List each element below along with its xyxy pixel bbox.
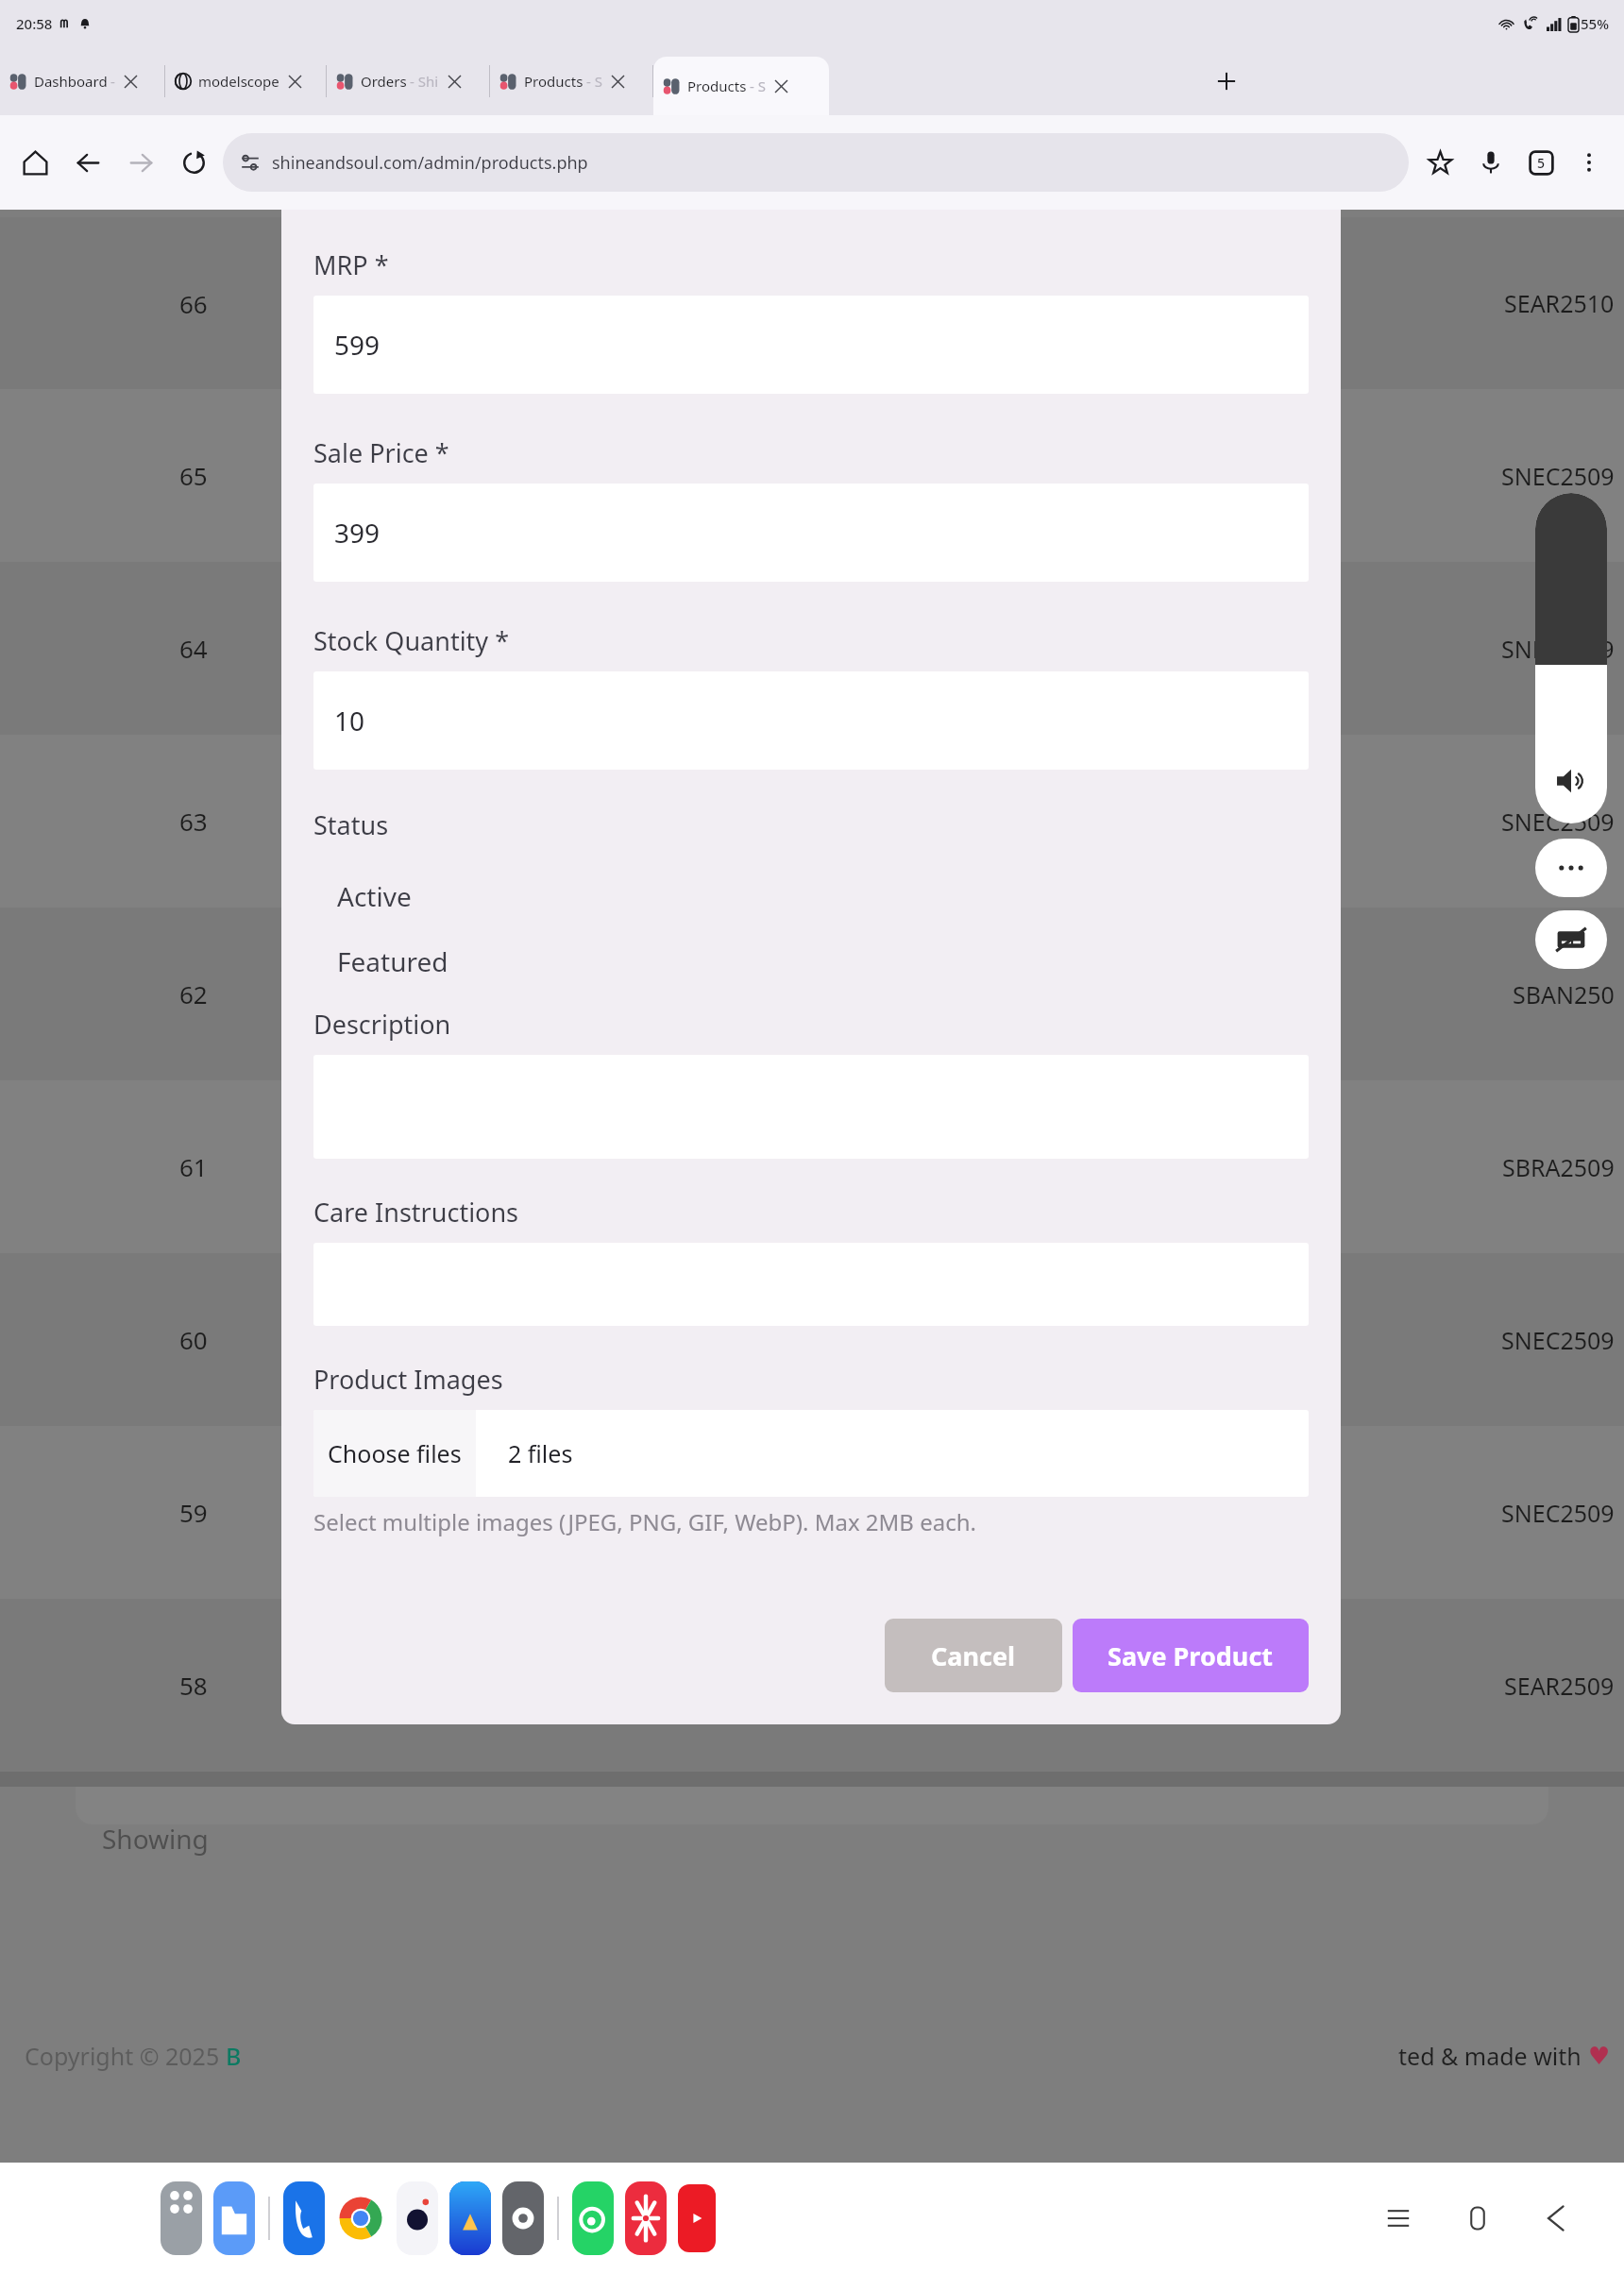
button[interactable]: Close tab (284, 71, 305, 92)
button[interactable]: Back (66, 141, 110, 184)
staticText: Save Product (1108, 1638, 1274, 1673)
staticText: Product Images (313, 1362, 503, 1397)
staticText: MRP * (313, 247, 389, 282)
button[interactable]: Close tab (444, 71, 465, 92)
button[interactable]: Orders (327, 47, 489, 115)
staticText: - Shi (410, 72, 439, 91)
staticText: 61 (179, 1150, 208, 1183)
button[interactable]: 10 (313, 671, 1309, 770)
staticText: 66 (179, 287, 208, 320)
button[interactable]: YouTube (678, 2184, 716, 2252)
button[interactable]: Reload (172, 141, 215, 184)
button[interactable]: Recent apps (1365, 2185, 1431, 2251)
staticText: SNEC2509 (1501, 633, 1615, 665)
staticText: 399 (334, 515, 381, 551)
staticText: Orders (361, 72, 407, 91)
button[interactable]: App (283, 2181, 325, 2255)
button[interactable]: Volume (1535, 493, 1607, 823)
button[interactable]: Voice search (1469, 141, 1513, 184)
button[interactable]: Active (313, 878, 1309, 914)
staticText: Showing (102, 1821, 209, 1857)
button[interactable]: Dashboard (0, 47, 164, 115)
staticText: Stock Quantity * (313, 623, 510, 658)
button[interactable]: More (1535, 839, 1607, 897)
button[interactable]: Home (1445, 2185, 1511, 2251)
staticText: Featured (337, 943, 448, 979)
staticText: Copyright © 2025 (25, 2040, 226, 2072)
button[interactable]: More options (1567, 141, 1611, 184)
staticText: 62 (179, 977, 208, 1010)
staticText: Status (313, 807, 389, 842)
button[interactable]: Cancel (885, 1619, 1062, 1692)
button[interactable]: App (397, 2181, 438, 2255)
staticText: 60 (179, 1323, 208, 1356)
staticText: Care Instructions (313, 1195, 519, 1230)
button[interactable]: App (572, 2181, 614, 2255)
button[interactable]: Choose files (313, 1410, 1309, 1497)
button[interactable]: Bookmark (1418, 141, 1462, 184)
staticText: 5 (1537, 154, 1546, 172)
button[interactable]: New tab (829, 47, 1624, 115)
staticText: ted & made with (1398, 2040, 1588, 2072)
staticText: Cancel (931, 1638, 1016, 1673)
button[interactable]: App (161, 2181, 202, 2255)
button[interactable]: App (502, 2181, 544, 2255)
button[interactable]: Close tab (770, 76, 791, 96)
button[interactable]: App (625, 2181, 667, 2255)
staticText: 64 (179, 632, 208, 665)
staticText: 599 (334, 327, 381, 363)
staticText: 20:58 (16, 14, 53, 33)
staticText: - S (586, 72, 602, 91)
button[interactable]: modelscope (165, 47, 326, 115)
staticText: - S (750, 76, 766, 95)
button[interactable]: Close tab (607, 71, 628, 92)
button[interactable]: Close tab (120, 71, 141, 92)
staticText: 63 (179, 805, 208, 838)
button[interactable]: Featured (313, 943, 1309, 979)
staticText: Description (313, 1007, 451, 1042)
staticText: SNEC2509 (1501, 806, 1615, 838)
staticText: shineandsoul.com/admin/products.php (272, 151, 588, 175)
staticText: Sale Price * (313, 435, 449, 470)
button[interactable]: Chrome (336, 2194, 385, 2243)
staticText: Products (524, 72, 584, 91)
staticText: SEAR2510 (1504, 287, 1615, 319)
staticText: Select multiple images (JPEG, PNG, GIF, … (313, 1506, 976, 1537)
button[interactable]: 599 (313, 296, 1309, 394)
staticText: 55% (1581, 14, 1609, 33)
staticText: SBRA2509 (1502, 1151, 1615, 1183)
staticText: 10 (334, 703, 365, 738)
staticText: Products (687, 76, 747, 95)
staticText: Dashboard (34, 72, 108, 91)
staticText: 58 (179, 1669, 208, 1702)
staticText: SEAR2509 (1504, 1670, 1615, 1702)
button[interactable]: App (213, 2181, 255, 2255)
button[interactable]: Home (13, 141, 57, 184)
button[interactable]: Forward (119, 141, 162, 184)
staticText: 59 (179, 1496, 208, 1529)
button[interactable]: 399 (313, 484, 1309, 582)
staticText: modelscope (198, 72, 279, 91)
staticText: B (226, 2040, 242, 2072)
staticText: SNEC2509 (1501, 1324, 1615, 1356)
staticText: ♥ (1588, 2042, 1611, 2070)
button[interactable]: Hide subtitles (1535, 910, 1607, 969)
staticText: 65 (179, 459, 208, 492)
button[interactable]: Save Product (1073, 1619, 1309, 1692)
staticText: SNEC2509 (1501, 460, 1615, 492)
staticText: SBAN250 (1513, 978, 1615, 1010)
staticText: - (110, 72, 115, 91)
staticText: Active (337, 878, 412, 914)
button[interactable]: shineandsoul.com/admin/products.php (223, 133, 1409, 192)
button[interactable]: Tabs (1520, 142, 1562, 183)
staticText: Choose files (328, 1437, 462, 1469)
staticText: SNEC2509 (1501, 1497, 1615, 1529)
button[interactable]: Products (490, 47, 652, 115)
button[interactable]: Back (1524, 2185, 1590, 2251)
button[interactable]: Products (653, 57, 829, 115)
button[interactable]: App (449, 2181, 491, 2255)
staticText: 2 files (508, 1437, 573, 1469)
